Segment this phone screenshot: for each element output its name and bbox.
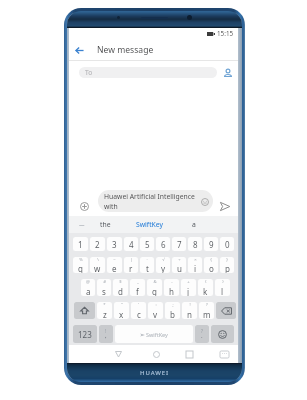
button[interactable]: Huawei Artificial Intelligence with <box>98 190 213 212</box>
button[interactable]: $ <box>113 279 128 296</box>
staticText: 7 <box>177 239 182 250</box>
button[interactable]: the <box>94 216 116 233</box>
button[interactable]: √ <box>156 257 170 273</box>
button[interactable]: 3 <box>107 237 122 251</box>
staticText: ( <box>205 279 207 285</box>
button[interactable]: & <box>147 279 162 296</box>
button[interactable]: 9 <box>204 237 218 251</box>
button[interactable]: ) <box>215 279 230 296</box>
button[interactable]: _ <box>130 279 145 296</box>
staticText: % <box>79 257 83 263</box>
button[interactable]: 0 <box>220 237 234 251</box>
button[interactable]: 1 <box>73 237 88 251</box>
staticText: ; <box>172 302 174 308</box>
staticText: - <box>171 279 173 285</box>
staticText: ? <box>206 302 208 308</box>
button[interactable]: { <box>204 257 218 273</box>
staticText: t <box>146 263 149 273</box>
staticText: g <box>152 286 157 296</box>
staticText: p <box>225 263 230 273</box>
button[interactable]: + <box>181 279 196 296</box>
staticText: 123 <box>78 329 92 340</box>
staticText: 8 <box>193 239 198 250</box>
button[interactable]: Hide keyboard <box>216 346 232 362</box>
staticText: 6 <box>161 239 166 250</box>
staticText: n <box>187 309 192 319</box>
button[interactable]: Shift <box>74 302 95 319</box>
button[interactable]: Send <box>216 197 234 215</box>
staticText: r <box>129 263 133 273</box>
button[interactable]: ? <box>199 302 214 319</box>
staticText: ' <box>138 302 139 308</box>
staticText: i <box>194 263 197 273</box>
staticText: $ <box>119 279 122 285</box>
button[interactable]: " <box>114 302 129 319</box>
staticText: ? <box>201 328 203 334</box>
staticText: 5 <box>145 239 150 250</box>
button[interactable]: 2 <box>90 237 105 251</box>
staticText: l <box>221 286 224 296</box>
staticText: Huawei Artificial Intelligence with <box>104 192 195 211</box>
staticText: · <box>146 257 148 263</box>
button[interactable]: } <box>220 257 234 273</box>
button[interactable]: 6 <box>156 237 170 251</box>
staticText: 0 <box>225 239 230 250</box>
button[interactable]: Back <box>110 346 126 362</box>
button[interactable]: · <box>140 257 154 273</box>
button[interactable]: # <box>97 279 111 296</box>
staticText: ! <box>189 302 191 308</box>
button[interactable]: ( <box>198 279 213 296</box>
button[interactable]: | <box>124 257 138 273</box>
button[interactable]: a <box>182 216 206 233</box>
button[interactable]: ; <box>165 302 180 319</box>
button[interactable]: — <box>69 216 94 233</box>
staticText: ~ <box>113 257 116 263</box>
staticText: New message <box>97 44 154 56</box>
button[interactable]: 123 <box>73 325 97 343</box>
button[interactable]: \ <box>90 257 105 273</box>
staticText: 15:15 <box>217 29 234 38</box>
button[interactable]: Add attachment <box>75 197 93 215</box>
button[interactable]: Recents <box>181 346 197 362</box>
staticText: a <box>86 286 91 296</box>
staticText: — <box>79 221 85 228</box>
button[interactable]: × <box>188 257 202 273</box>
button[interactable]: SwiftKey <box>127 216 172 233</box>
button[interactable]: ÷ <box>172 257 186 273</box>
button[interactable]: Back <box>69 39 90 61</box>
button[interactable]: % <box>73 257 88 273</box>
button[interactable]: 8 <box>188 237 202 251</box>
button[interactable]: SwiftKey <box>115 325 193 343</box>
staticText: @ <box>86 279 90 285</box>
button[interactable]: To <box>79 67 217 78</box>
button[interactable]: ? <box>195 325 209 343</box>
other: Backspace <box>221 307 232 315</box>
button[interactable]: @ <box>81 279 95 296</box>
button[interactable]: 4 <box>124 237 138 251</box>
button[interactable]: : <box>148 302 163 319</box>
button[interactable]: * <box>97 302 112 319</box>
staticText: x <box>119 309 124 319</box>
button[interactable]: 7 <box>172 237 186 251</box>
staticText: " <box>121 302 123 308</box>
button[interactable]: 5 <box>140 237 154 251</box>
staticText: 9 <box>209 239 214 250</box>
button[interactable]: ! <box>99 325 113 343</box>
staticText: 3 <box>112 239 117 250</box>
staticText: w <box>94 263 101 273</box>
button[interactable]: Backspace <box>216 302 236 319</box>
button[interactable]: ! <box>182 302 197 319</box>
staticText: v <box>153 309 158 319</box>
button[interactable]: Emoji <box>211 325 234 343</box>
staticText: f <box>136 286 139 296</box>
button[interactable]: Home <box>148 346 164 362</box>
staticText: * <box>103 302 106 308</box>
button[interactable]: ~ <box>107 257 122 273</box>
button[interactable]: - <box>164 279 179 296</box>
button[interactable]: Emoji <box>199 196 210 207</box>
staticText: k <box>203 286 208 296</box>
button[interactable]: Choose contact <box>217 61 238 84</box>
staticText: : <box>155 302 157 308</box>
button[interactable]: ' <box>131 302 146 319</box>
staticText: , <box>105 332 107 340</box>
